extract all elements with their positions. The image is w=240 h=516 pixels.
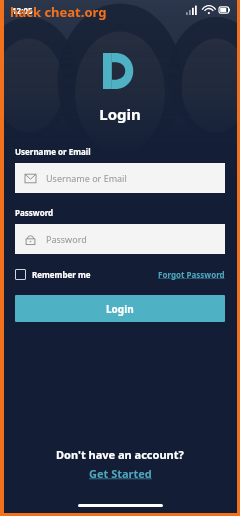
button[interactable]: Password [15, 224, 225, 254]
staticText: Username or Email [15, 146, 91, 157]
staticText: Login [106, 302, 134, 316]
staticText: 12:05 [12, 5, 33, 16]
button[interactable]: Get Started [83, 465, 158, 482]
button[interactable]: Login [15, 295, 225, 322]
staticText: hack cheat.org [10, 3, 107, 21]
button[interactable]: Remember me [15, 267, 91, 282]
staticText: Remember me [32, 269, 91, 280]
staticText: Password [46, 233, 87, 245]
staticText: Don't have an account? [56, 447, 184, 462]
staticText: Forgot Password [158, 269, 225, 280]
staticText: Login [0, 104, 240, 124]
staticText: Password [15, 207, 54, 218]
staticText: Username or Email [46, 172, 127, 184]
button[interactable]: Username or Email [15, 163, 225, 193]
staticText: Get Started [89, 466, 152, 481]
button[interactable]: Forgot Password [158, 267, 225, 282]
